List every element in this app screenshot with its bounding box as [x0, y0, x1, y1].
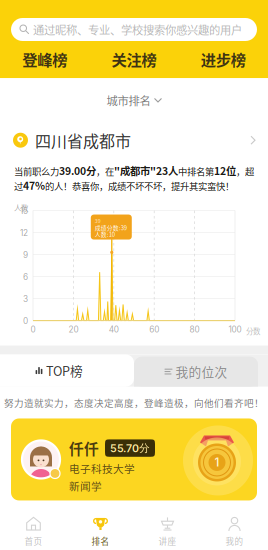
- staticText: 新闻学: [69, 478, 102, 494]
- staticText: 人数:10: [95, 230, 115, 238]
- staticText: 电子科技大学: [69, 461, 135, 476]
- staticText: 100: [228, 325, 241, 335]
- button[interactable]: 我的位次: [134, 357, 258, 387]
- staticText: 6: [23, 272, 28, 282]
- staticText: 1: [214, 456, 219, 469]
- staticText: 39: [95, 217, 101, 224]
- staticText: 0: [23, 316, 28, 326]
- staticText: 12: [20, 228, 28, 238]
- staticText: 当前职么力39.00分，在"成都市"23人中排名第12位，超过47%的人！恭喜你…: [14, 163, 254, 193]
- button[interactable]: 四川省成都市: [0, 122, 268, 158]
- staticText: 仟仟: [69, 437, 99, 459]
- button[interactable]: 登峰榜: [0, 48, 89, 70]
- button[interactable]: 首页: [0, 513, 67, 550]
- staticText: 20: [68, 325, 78, 335]
- staticText: 9: [23, 250, 28, 260]
- button[interactable]: 进步榜: [179, 48, 268, 70]
- staticText: 15: [20, 206, 28, 216]
- staticText: 讲座: [158, 535, 176, 547]
- button[interactable]: TOP榜: [0, 355, 134, 387]
- button[interactable]: 讲座: [134, 513, 201, 550]
- button[interactable]: 关注榜: [89, 48, 179, 70]
- staticText: TOP榜: [46, 361, 83, 380]
- staticText: 55.70分: [110, 441, 150, 455]
- staticText: 3: [23, 294, 28, 304]
- staticText: 我的: [225, 535, 243, 547]
- staticText: 人数: [14, 203, 28, 213]
- staticText: 分数: [246, 326, 260, 336]
- staticText: 通过昵称、专业、学校搜索你感兴趣的用户: [33, 21, 242, 38]
- button[interactable]: 仟仟: [11, 418, 257, 500]
- button[interactable]: 排名: [67, 513, 134, 550]
- staticText: 成绩分数:39: [95, 223, 127, 232]
- staticText: 首页: [24, 535, 42, 547]
- staticText: 40: [109, 325, 119, 335]
- staticText: 排名: [91, 535, 109, 547]
- staticText: 60: [149, 325, 159, 335]
- button[interactable]: 通过昵称、专业、学校搜索你感兴趣的用户: [11, 18, 257, 41]
- staticText: 进步榜: [201, 48, 246, 70]
- staticText: 城市排名: [106, 92, 150, 108]
- staticText: 关注榜: [111, 48, 156, 70]
- staticText: 登峰榜: [22, 48, 67, 70]
- staticText: 0: [30, 325, 35, 335]
- button[interactable]: 城市排名: [0, 78, 268, 122]
- staticText: 我的位次: [175, 362, 227, 381]
- staticText: 80: [190, 325, 200, 335]
- staticText: 努力造就实力，态度决定高度，登峰造极，向他们看齐吧！: [4, 396, 264, 409]
- staticText: 四川省成都市: [35, 129, 131, 152]
- button[interactable]: 我的: [201, 513, 268, 550]
